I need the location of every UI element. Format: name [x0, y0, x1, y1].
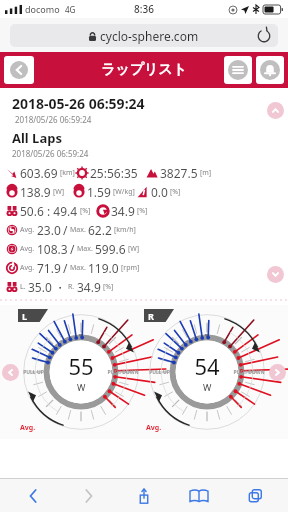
- staticText: L.: [20, 282, 26, 292]
- button[interactable]: Back: [4, 56, 34, 84]
- staticText: [km/h]: [114, 225, 136, 235]
- staticText: ・: [54, 280, 66, 295]
- staticText: Avg.: [146, 423, 162, 433]
- button[interactable]: Scroll up: [267, 102, 284, 119]
- staticText: Avg.: [20, 225, 35, 235]
- button[interactable]: Scroll down: [267, 266, 284, 283]
- staticText: R: [148, 310, 154, 322]
- staticText: PULL UP: [149, 369, 170, 376]
- button[interactable]: Address bar: [10, 24, 278, 47]
- staticText: [%]: [137, 206, 148, 216]
- staticText: 0.0: [151, 184, 168, 200]
- button[interactable]: Menu: [224, 56, 252, 84]
- staticText: [rpm]: [121, 263, 140, 273]
- staticText: Avg.: [20, 423, 36, 433]
- staticText: 71.9: [37, 260, 61, 276]
- staticText: All Laps: [12, 129, 62, 147]
- staticText: 1.59: [87, 184, 111, 200]
- staticText: PULL UP: [23, 369, 44, 376]
- staticText: PUSH DOWN: [233, 369, 265, 376]
- staticText: 2018/05/26 06:59:24: [15, 114, 92, 125]
- staticText: 4G: [65, 4, 76, 15]
- staticText: [%]: [170, 187, 181, 197]
- staticText: Max.: [77, 244, 93, 254]
- button[interactable]: Reload: [256, 28, 272, 44]
- button[interactable]: Forward: [67, 479, 111, 512]
- staticText: L: [22, 310, 28, 322]
- staticText: PUSH DOWN: [107, 369, 139, 376]
- staticText: docomo: [25, 3, 60, 15]
- staticText: /: [70, 241, 75, 257]
- staticText: [km]: [60, 168, 75, 178]
- staticText: 119.0: [88, 260, 119, 276]
- button[interactable]: Share: [122, 479, 166, 512]
- staticText: Avg.: [20, 263, 35, 273]
- staticText: W: [77, 381, 86, 393]
- staticText: 35.0: [28, 279, 52, 295]
- staticText: 138.9: [20, 184, 51, 200]
- staticText: 62.2: [88, 222, 112, 238]
- button[interactable]: Notifications: [256, 56, 284, 84]
- button[interactable]: Next: [269, 364, 286, 381]
- button[interactable]: Previous: [2, 364, 19, 381]
- staticText: 50.6 : 49.4: [20, 203, 78, 219]
- staticText: [%]: [80, 206, 91, 216]
- button[interactable]: Pedaling efficiency R: [144, 309, 270, 435]
- staticText: 2018-05-26 06:59:24: [12, 94, 145, 113]
- staticText: 54: [194, 351, 220, 381]
- staticText: [W]: [128, 244, 140, 254]
- staticText: cyclo-sphere.com: [100, 28, 199, 44]
- staticText: [m]: [200, 168, 212, 178]
- staticText: 25:56:35: [90, 165, 138, 181]
- staticText: 55: [68, 351, 94, 381]
- button[interactable]: Bookmarks: [177, 479, 221, 512]
- staticText: [W]: [53, 187, 65, 197]
- staticText: 599.6: [95, 241, 126, 257]
- staticText: 2018/05/26 06:59:24: [12, 148, 89, 159]
- staticText: ラップリスト: [101, 61, 187, 79]
- staticText: [W/kg]: [113, 187, 135, 197]
- staticText: 23.0: [37, 222, 61, 238]
- staticText: 34.9: [77, 279, 101, 295]
- staticText: 603.69: [20, 165, 58, 181]
- staticText: W: [203, 381, 212, 393]
- staticText: Max.: [70, 263, 86, 273]
- staticText: R.: [68, 282, 75, 292]
- button[interactable]: Pedaling efficiency L: [18, 309, 144, 435]
- button[interactable]: Tabs: [233, 479, 277, 512]
- staticText: Max.: [70, 225, 86, 235]
- staticText: 8:36: [134, 2, 154, 16]
- staticText: 108.3: [37, 241, 68, 257]
- staticText: /: [63, 260, 68, 276]
- staticText: 3827.5: [160, 165, 198, 181]
- staticText: /: [63, 222, 68, 238]
- button[interactable]: Back: [11, 479, 55, 512]
- staticText: Avg.: [20, 244, 35, 254]
- staticText: [%]: [103, 282, 114, 292]
- staticText: 34.9: [111, 203, 135, 219]
